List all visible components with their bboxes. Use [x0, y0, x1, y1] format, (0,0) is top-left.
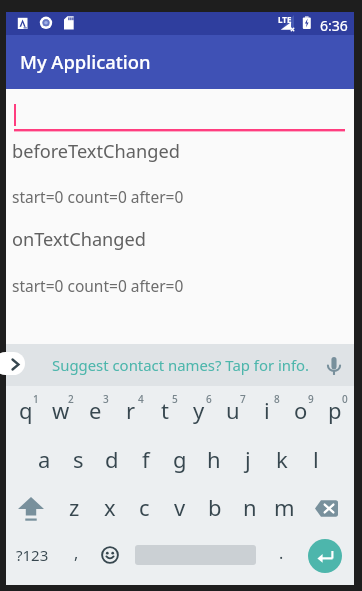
- button[interactable]: j: [231, 435, 265, 484]
- staticText: l: [313, 444, 319, 474]
- button[interactable]: 3: [78, 386, 113, 435]
- staticText: ,: [74, 542, 79, 564]
- staticText: o: [294, 395, 308, 425]
- staticText: y: [193, 395, 205, 425]
- staticText: z: [69, 492, 80, 522]
- button[interactable]: 6: [182, 386, 216, 435]
- button[interactable]: s: [61, 435, 95, 484]
- staticText: x: [104, 492, 116, 522]
- staticText: k: [276, 444, 288, 474]
- staticText: 0: [342, 392, 348, 406]
- button[interactable]: m: [267, 484, 302, 533]
- staticText: beforeTextChanged: [12, 139, 180, 164]
- staticText: LTE: [278, 14, 292, 25]
- staticText: w: [52, 395, 70, 425]
- staticText: a: [38, 444, 51, 474]
- button[interactable]: Backspace: [302, 484, 354, 533]
- staticText: f: [142, 444, 150, 474]
- staticText: r: [126, 395, 136, 425]
- button[interactable]: ,: [55, 533, 93, 585]
- staticText: ?123: [16, 545, 49, 565]
- staticText: v: [174, 492, 186, 522]
- button[interactable]: l: [299, 435, 333, 484]
- button[interactable]: Space: [127, 533, 265, 585]
- button[interactable]: x: [92, 484, 127, 533]
- staticText: s: [73, 444, 84, 474]
- button[interactable]: Voice input: [326, 355, 342, 376]
- button[interactable]: 2: [43, 386, 78, 435]
- staticText: 2: [68, 392, 74, 406]
- button[interactable]: g: [163, 435, 197, 484]
- button[interactable]: h: [197, 435, 231, 484]
- staticText: b: [208, 492, 222, 522]
- button[interactable]: Emoji: [93, 533, 127, 585]
- staticText: e: [89, 395, 102, 425]
- staticText: p: [328, 395, 342, 425]
- button[interactable]: k: [265, 435, 299, 484]
- button[interactable]: n: [232, 484, 267, 533]
- staticText: m: [274, 492, 295, 522]
- button[interactable]: Suggest contact names? Tap for info.: [52, 355, 310, 375]
- button[interactable]: 8: [250, 386, 284, 435]
- staticText: h: [207, 444, 221, 474]
- button[interactable]: d: [95, 435, 129, 484]
- button[interactable]: ?123: [6, 533, 55, 585]
- staticText: 1: [33, 392, 39, 406]
- staticText: n: [243, 492, 257, 522]
- staticText: 7: [240, 392, 246, 406]
- staticText: d: [105, 444, 119, 474]
- button[interactable]: Shift: [6, 484, 57, 533]
- staticText: onTextChanged: [12, 227, 146, 252]
- button[interactable]: 5: [148, 386, 182, 435]
- staticText: i: [264, 395, 270, 425]
- button[interactable]: c: [127, 484, 162, 533]
- button[interactable]: a: [27, 435, 61, 484]
- button[interactable]: Enter: [297, 533, 354, 585]
- staticText: c: [139, 492, 150, 522]
- staticText: 9: [308, 392, 314, 406]
- staticText: 8: [274, 392, 280, 406]
- staticText: 6:36: [320, 16, 348, 35]
- button[interactable]: Expand suggestions: [0, 352, 25, 375]
- staticText: 6: [206, 392, 212, 406]
- staticText: q: [19, 395, 33, 425]
- button[interactable]: 1: [8, 386, 43, 435]
- staticText: g: [173, 444, 187, 474]
- staticText: t: [161, 395, 169, 425]
- button[interactable]: v: [162, 484, 197, 533]
- staticText: j: [245, 444, 251, 474]
- button[interactable]: 7: [216, 386, 250, 435]
- button[interactable]: 0: [318, 386, 352, 435]
- staticText: 3: [103, 392, 109, 406]
- staticText: 4: [138, 392, 144, 406]
- staticText: u: [226, 395, 240, 425]
- staticText: My Application: [20, 49, 151, 74]
- button[interactable]: z: [57, 484, 92, 533]
- button[interactable]: .: [265, 533, 297, 585]
- button[interactable]: b: [197, 484, 232, 533]
- button[interactable]: f: [129, 435, 163, 484]
- staticText: start=0 count=0 after=0: [12, 275, 184, 296]
- button[interactable]: 4: [113, 386, 148, 435]
- staticText: 5: [172, 392, 178, 406]
- staticText: start=0 count=0 after=0: [12, 186, 184, 207]
- button[interactable]: 9: [284, 386, 318, 435]
- staticText: .: [279, 542, 284, 564]
